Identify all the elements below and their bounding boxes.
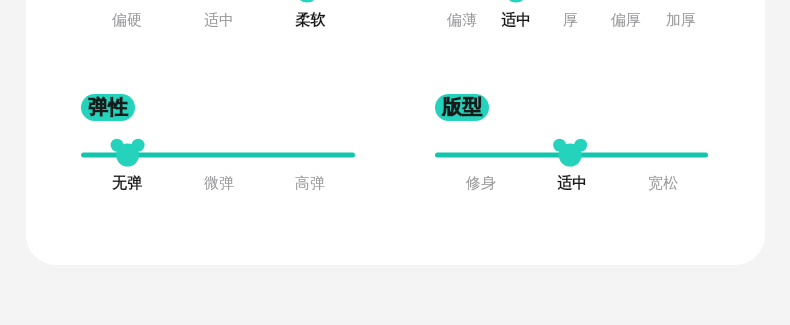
button[interactable]: 加厚 — [653, 11, 708, 30]
staticText: 宽松 — [648, 174, 678, 193]
button[interactable]: 适中 — [173, 11, 264, 30]
staticText: 偏硬 — [112, 11, 142, 30]
button[interactable]: 修身 — [435, 174, 526, 193]
button[interactable]: 偏薄 — [435, 11, 489, 30]
staticText: 适中 — [204, 11, 234, 30]
staticText: 版型 — [442, 95, 482, 120]
button[interactable]: 偏厚 — [598, 11, 653, 30]
button[interactable]: 柔软 — [264, 11, 355, 30]
button[interactable]: 适中 — [489, 11, 543, 30]
staticText: 修身 — [466, 174, 496, 193]
button[interactable]: 弹性 — [81, 94, 135, 121]
staticText: 加厚 — [666, 11, 696, 30]
staticText: 偏厚 — [611, 11, 641, 30]
staticText: 柔软 — [295, 11, 325, 30]
staticText: 高弹 — [295, 174, 325, 193]
button[interactable]: 偏硬 — [81, 11, 173, 30]
button[interactable]: 微弹 — [173, 174, 264, 193]
button[interactable]: Slider 弹性 — [81, 140, 355, 170]
button[interactable]: 版型 — [435, 94, 489, 121]
button[interactable]: Slider 版型 — [435, 140, 708, 170]
button[interactable]: 适中 — [526, 174, 617, 193]
button[interactable]: 厚 — [543, 11, 598, 30]
button[interactable]: 无弹 — [81, 174, 173, 193]
staticText: 无弹 — [112, 174, 142, 193]
staticText: 弹性 — [88, 95, 128, 120]
button[interactable]: 宽松 — [617, 174, 708, 193]
staticText: 微弹 — [204, 174, 234, 193]
staticText: 适中 — [501, 11, 531, 30]
staticText: 厚 — [563, 11, 578, 30]
staticText: 偏薄 — [447, 11, 477, 30]
staticText: 适中 — [557, 174, 587, 193]
button[interactable]: 高弹 — [264, 174, 355, 193]
